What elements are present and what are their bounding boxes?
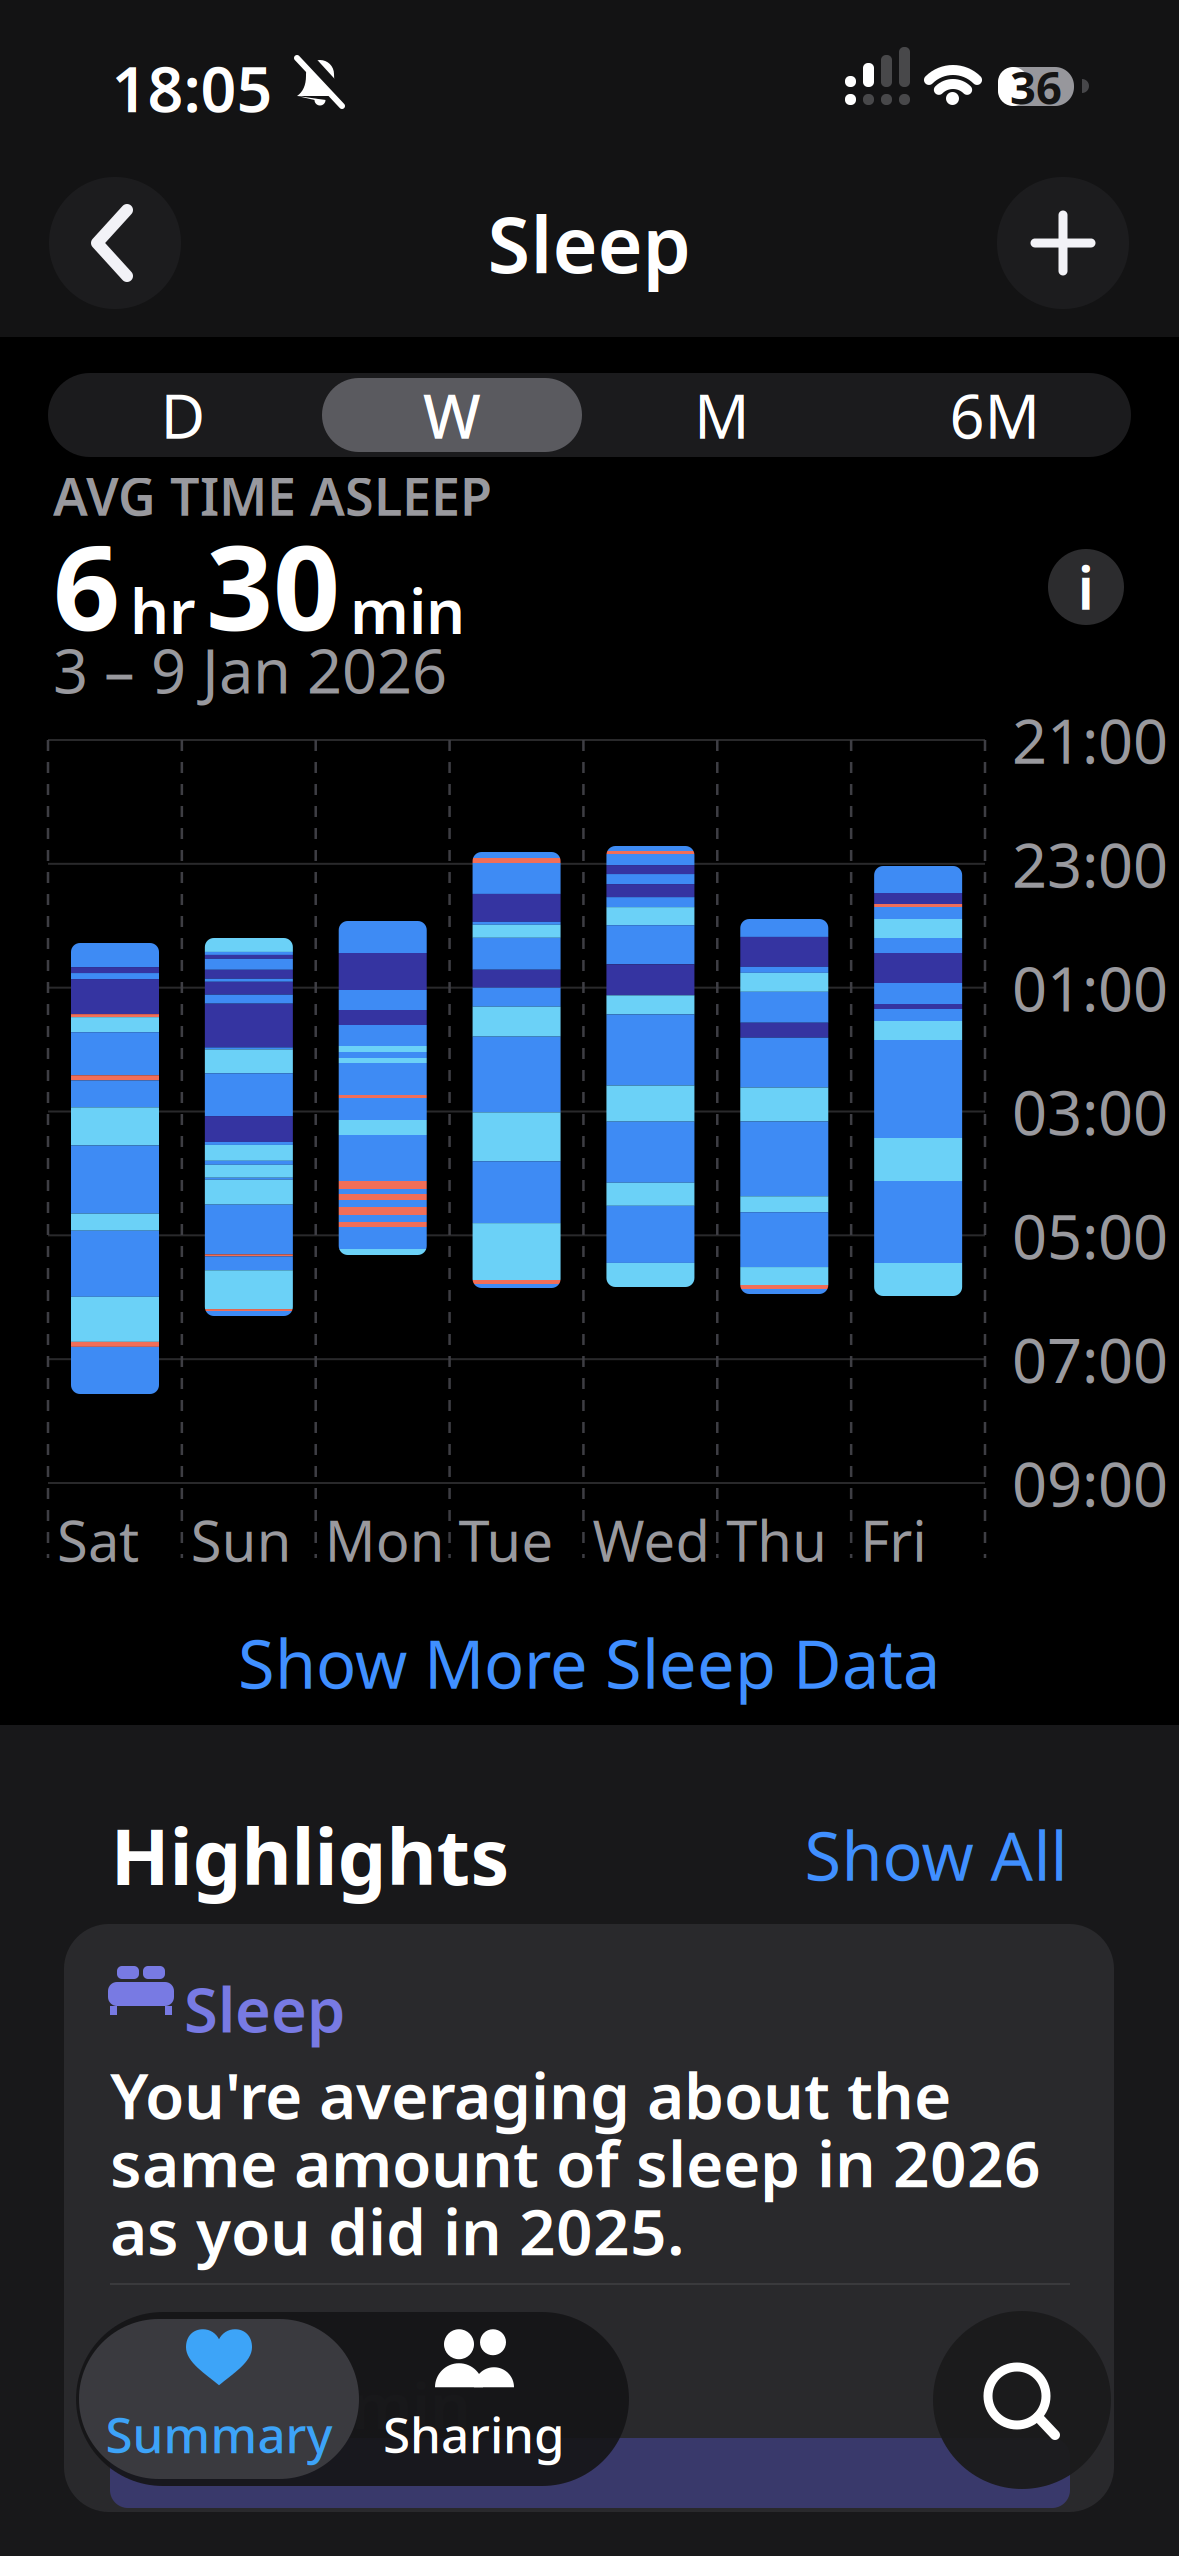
- staticText: 01:00: [1012, 947, 1168, 1028]
- staticText: i: [1077, 548, 1094, 626]
- staticText: Thu: [726, 1503, 827, 1577]
- staticText: as you did in 2025.: [110, 2188, 685, 2273]
- staticText: Sleep: [184, 1968, 345, 2049]
- button[interactable]: Add Data: [997, 177, 1129, 309]
- staticText: same amount of sleep in 2026: [110, 2120, 1041, 2205]
- staticText: Sun: [191, 1503, 292, 1577]
- staticText: Wed: [592, 1503, 709, 1577]
- button[interactable]: W: [317, 373, 587, 457]
- staticText: 3 – 9 Jan 2026: [53, 629, 447, 710]
- button[interactable]: 6M: [860, 373, 1130, 457]
- staticText: 18:05: [111, 46, 272, 130]
- staticText: 09:00: [1012, 1442, 1168, 1524]
- staticText: 36: [1010, 57, 1062, 117]
- staticText: hr: [130, 569, 196, 651]
- staticText: Sleep: [487, 192, 690, 294]
- staticText: D: [160, 374, 205, 456]
- staticText: AVG TIME ASLEEP: [53, 461, 492, 530]
- button[interactable]: Show More Sleep Data: [238, 1619, 940, 1707]
- staticText: Mon: [325, 1503, 445, 1577]
- staticText: W: [423, 374, 481, 456]
- staticText: Sat: [57, 1503, 139, 1577]
- staticText: 30: [206, 507, 340, 663]
- staticText: Sharing: [383, 2401, 565, 2467]
- button[interactable]: Summary: [79, 2318, 359, 2478]
- staticText: You're averaging about the: [110, 2052, 951, 2137]
- staticText: Highlights: [110, 1804, 509, 1906]
- button[interactable]: Search: [933, 2311, 1111, 2489]
- staticText: Show All: [804, 1811, 1067, 1899]
- staticText: 05:00: [1012, 1195, 1168, 1276]
- button[interactable]: M: [587, 373, 857, 457]
- staticText: 07:00: [1012, 1318, 1168, 1400]
- button[interactable]: D: [48, 373, 318, 457]
- button[interactable]: Back: [49, 177, 181, 309]
- staticText: Show More Sleep Data: [238, 1619, 940, 1707]
- button[interactable]: Sleep: [64, 1924, 1114, 2512]
- staticText: 21:00: [1012, 699, 1168, 781]
- staticText: 03:00: [1012, 1071, 1168, 1152]
- staticText: min: [350, 569, 465, 651]
- button[interactable]: Show All: [804, 1811, 1067, 1899]
- staticText: 23:00: [1012, 823, 1168, 904]
- staticText: Summary: [105, 2401, 332, 2467]
- button[interactable]: Sharing: [334, 2318, 614, 2478]
- staticText: 6M: [949, 374, 1040, 456]
- staticText: 6: [53, 507, 120, 663]
- staticText: M: [694, 374, 750, 456]
- button[interactable]: Info: [1048, 548, 1124, 626]
- staticText: Tue: [459, 1503, 554, 1577]
- staticText: 6 hr 32 min: [120, 2362, 471, 2447]
- staticText: Fri: [860, 1503, 926, 1577]
